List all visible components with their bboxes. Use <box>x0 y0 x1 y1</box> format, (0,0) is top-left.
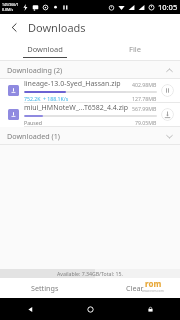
button[interactable]: Download <box>0 40 90 57</box>
staticText: miui_HMNoteW_...T6582_4.4.zip <box>24 103 129 113</box>
staticText: 752.2K <box>24 95 41 102</box>
button[interactable]: lineage-13.0-Syed_Hassan.zip <box>0 79 180 102</box>
button[interactable]: Resume <box>161 108 174 121</box>
button[interactable]: Home <box>60 298 120 320</box>
button[interactable]: Back <box>5 18 23 36</box>
staticText: File <box>129 44 141 54</box>
button[interactable]: Back <box>0 298 60 320</box>
button[interactable]: Settings <box>0 278 90 298</box>
staticText: 10:05 <box>158 2 178 12</box>
staticText: Downloading (2) <box>7 65 63 75</box>
button[interactable]: miui_HMNoteW_...T6582_4.4.zip <box>0 103 180 126</box>
button[interactable]: File <box>90 40 180 57</box>
staticText: Download <box>27 44 63 54</box>
staticText: + 188.1K/s <box>43 95 69 102</box>
button[interactable]: Clear <box>90 278 180 298</box>
button[interactable]: Downloading (2) <box>0 61 180 78</box>
other: Collapse <box>164 65 174 75</box>
staticText: Settings <box>31 283 59 293</box>
staticText: www.rom.com <box>142 289 164 293</box>
staticText: Clear <box>126 283 144 293</box>
staticText: Available: 7.34GB/Total: 15. <box>57 270 123 277</box>
staticText: 127.78MB <box>132 95 157 102</box>
staticText: 567.99MB <box>132 105 157 112</box>
button[interactable]: Pause <box>161 84 174 97</box>
other: Expand <box>164 131 174 141</box>
staticText: lineage-13.0-Syed_Hassan.zip <box>24 79 129 89</box>
staticText: Downloads <box>28 20 86 35</box>
button[interactable]: Recents <box>120 298 180 320</box>
button[interactable]: Downloaded (1) <box>0 127 180 144</box>
staticText: 8.8M/s <box>2 7 14 12</box>
staticText: rom <box>145 278 162 289</box>
staticText: 145/366/1 <box>2 2 19 7</box>
staticText: 402.98MB <box>132 81 157 88</box>
staticText: Paused <box>24 119 42 126</box>
staticText: 79.05MB <box>135 119 157 126</box>
staticText: Downloaded (1) <box>7 131 60 141</box>
